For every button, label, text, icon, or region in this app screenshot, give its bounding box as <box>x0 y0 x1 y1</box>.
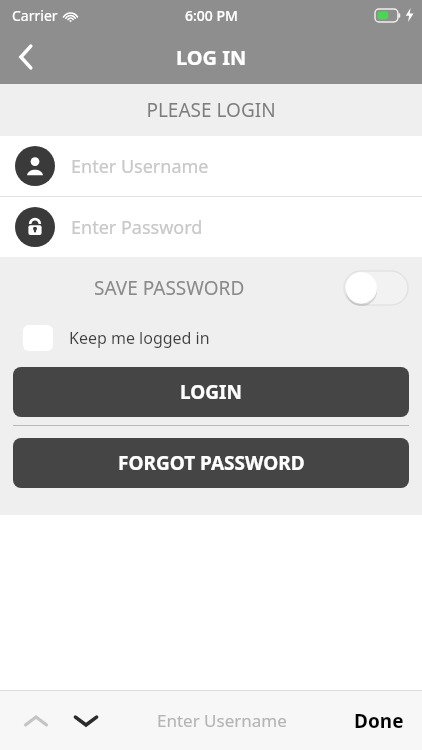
staticText: Done <box>354 708 404 734</box>
button[interactable]: Previous field <box>14 699 58 743</box>
button[interactable]: Done <box>336 698 422 744</box>
button[interactable]: Enter Username <box>0 136 422 196</box>
button[interactable]: Next field <box>64 699 108 743</box>
button[interactable]: Keep me logged in <box>0 319 422 357</box>
staticText: Enter Username <box>157 709 287 732</box>
staticText: FORGOT PASSWORD <box>118 450 305 476</box>
button[interactable]: FORGOT PASSWORD <box>13 438 409 488</box>
button[interactable]: SAVE PASSWORD <box>0 257 422 319</box>
staticText: 6:00 PM <box>185 6 238 25</box>
staticText: SAVE PASSWORD <box>94 275 245 301</box>
staticText: LOGIN <box>180 379 242 405</box>
staticText: Enter Username <box>71 154 209 179</box>
staticText: PLEASE LOGIN <box>146 97 276 123</box>
button[interactable]: Save password toggle <box>344 271 408 305</box>
staticText: LOG IN <box>176 44 247 71</box>
staticText: Enter Password <box>71 215 203 240</box>
staticText: Carrier <box>12 6 58 25</box>
button[interactable]: Enter Password <box>0 197 422 257</box>
button[interactable]: LOGIN <box>13 367 409 417</box>
button[interactable]: Back <box>0 31 52 83</box>
staticText: Keep me logged in <box>69 327 210 349</box>
